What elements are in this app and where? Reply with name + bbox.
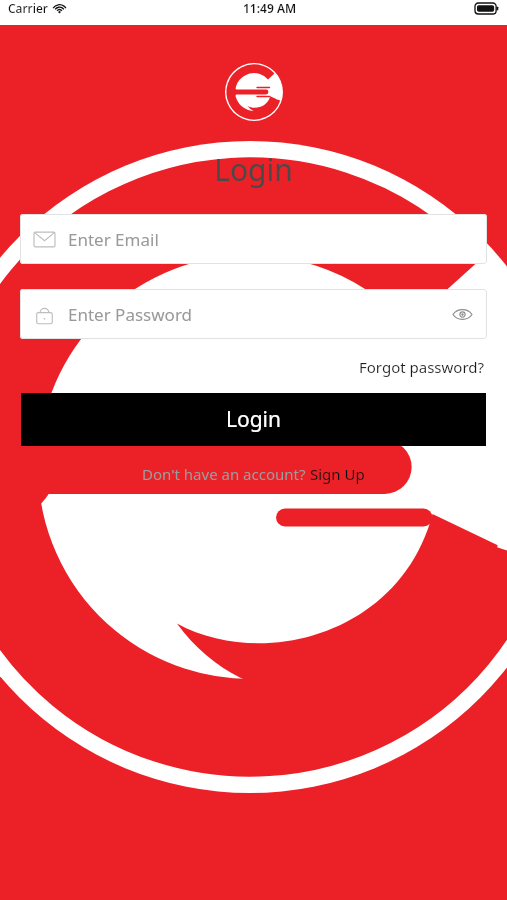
button[interactable]: Enter Password (20, 289, 487, 339)
staticText: Login (0, 149, 507, 190)
staticText: Carrier (8, 0, 48, 16)
staticText: 11:49 AM (243, 0, 297, 16)
button[interactable]: Enter Email (20, 214, 487, 264)
staticText: Enter Email (68, 228, 159, 251)
staticText: Forgot password? (359, 357, 485, 377)
button[interactable]: Show password (445, 297, 479, 331)
staticText: Enter Password (68, 303, 193, 326)
staticText: Don't have an account? (142, 464, 310, 484)
staticText: Sign Up (310, 464, 365, 484)
staticText: Login (226, 405, 282, 434)
button[interactable]: Login (21, 393, 486, 446)
button[interactable]: Sign Up (310, 464, 365, 484)
button[interactable]: Forgot password? (357, 355, 487, 379)
